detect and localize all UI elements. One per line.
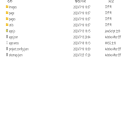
button[interactable]: sitemap.json 2020/7/25 17:28 Adobe After… [0,53,130,59]
button[interactable]: images 2020/7/19 10:37 文件夹 [0,5,130,11]
button[interactable]: Sort by type [105,0,130,4]
button[interactable]: app.wxss 2020/7/18 16:13 WXSS 文件 [0,41,130,47]
button[interactable]: app.json 2020/7/13 20:04 Adobe After Eff [0,35,130,41]
button[interactable]: project.config.json 2020/7/19 10:39 Adob… [0,47,130,53]
button[interactable]: pages 2020/7/19 10:37 文件夹 [0,17,130,23]
button[interactable]: app.js 2020/7/13 16:15 JavaScript 文件 [0,29,130,35]
button[interactable]: Sort by name [5,0,65,4]
button[interactable]: Sort by date modified [72,0,104,4]
button[interactable]: page 2020/7/19 10:37 文件夹 [0,11,130,17]
button[interactable]: utils 2020/7/19 10:37 文件夹 [0,23,130,29]
